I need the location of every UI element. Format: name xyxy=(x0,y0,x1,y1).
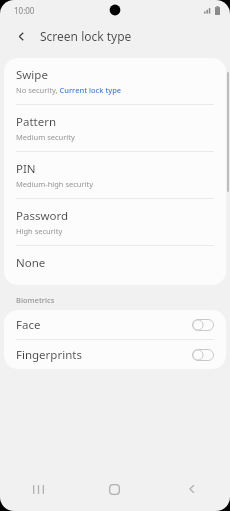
button[interactable]: Pattern xyxy=(4,105,226,151)
staticText: Medium security xyxy=(16,132,75,142)
staticText: 10:00 xyxy=(14,5,35,16)
staticText: Screen lock type xyxy=(40,28,132,44)
button[interactable]: Home xyxy=(76,467,153,511)
staticText: Password xyxy=(16,208,69,224)
button[interactable]: Fingerprints xyxy=(4,340,226,369)
staticText: Biometrics xyxy=(16,295,55,305)
staticText: PIN xyxy=(16,161,36,177)
button[interactable]: Password xyxy=(4,199,226,245)
staticText: No security, Current lock type xyxy=(16,85,122,95)
button[interactable]: Back xyxy=(10,25,32,47)
button[interactable]: Back xyxy=(153,467,230,511)
button[interactable]: Recent apps xyxy=(0,467,76,511)
staticText: None xyxy=(16,255,46,271)
staticText: Pattern xyxy=(16,114,57,130)
button[interactable]: None xyxy=(4,246,226,285)
staticText: High security xyxy=(16,226,63,236)
staticText: Medium-high security xyxy=(16,179,94,189)
button[interactable]: PIN xyxy=(4,152,226,198)
button[interactable]: Swipe xyxy=(4,58,226,104)
staticText: Fingerprints xyxy=(16,347,192,363)
staticText: Swipe xyxy=(16,67,48,83)
staticText: Face xyxy=(16,317,192,333)
button[interactable]: Face xyxy=(4,310,226,339)
